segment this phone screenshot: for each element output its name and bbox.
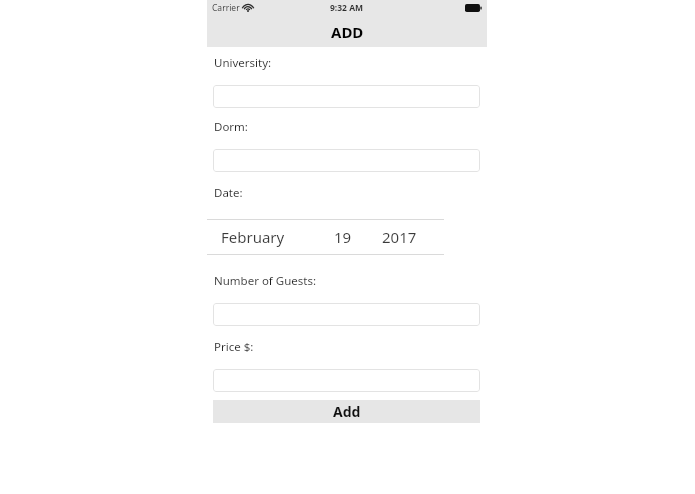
other: Battery full bbox=[465, 4, 482, 12]
staticText: Carrier bbox=[212, 2, 240, 14]
staticText: 19 bbox=[334, 227, 352, 247]
staticText: University: bbox=[214, 55, 272, 71]
staticText: Date: bbox=[214, 185, 243, 201]
button[interactable] bbox=[213, 303, 480, 326]
staticText: Price $: bbox=[214, 339, 254, 355]
other: Wi-Fi signal bbox=[243, 4, 253, 12]
staticText: 9:32 AM bbox=[330, 2, 364, 14]
button[interactable]: Date picker February 19 2017 bbox=[207, 219, 444, 255]
staticText: February bbox=[221, 227, 285, 247]
button[interactable] bbox=[213, 85, 480, 108]
button[interactable] bbox=[213, 369, 480, 392]
staticText: Number of Guests: bbox=[214, 273, 317, 289]
button[interactable] bbox=[213, 149, 480, 172]
staticText: ADD bbox=[331, 22, 364, 42]
button[interactable]: Add bbox=[213, 400, 480, 423]
staticText: 2017 bbox=[382, 227, 417, 247]
staticText: Add bbox=[333, 402, 361, 421]
staticText: Dorm: bbox=[214, 119, 248, 135]
